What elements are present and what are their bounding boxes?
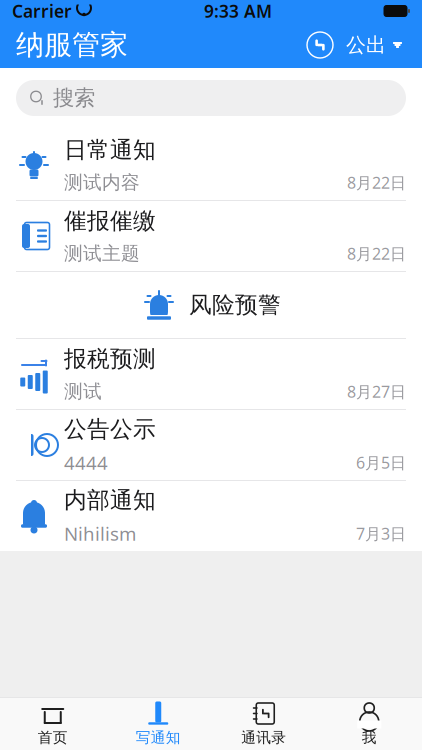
- button[interactable]: 风险预警: [0, 272, 422, 339]
- staticText: 8月22日: [347, 243, 406, 264]
- staticText: 7月3日: [356, 523, 406, 544]
- button[interactable]: 我: [316, 698, 422, 750]
- button[interactable]: 公出: [340, 25, 408, 65]
- button[interactable]: 日常通知: [0, 130, 422, 201]
- staticText: 我: [362, 728, 377, 746]
- staticText: 4444: [64, 450, 108, 475]
- button[interactable]: 通讯录: [211, 698, 316, 750]
- staticText: 8月27日: [347, 381, 406, 402]
- button[interactable]: 催报催缴: [0, 201, 422, 272]
- staticText: 测试主题: [64, 242, 140, 265]
- staticText: 报税预测: [64, 345, 156, 373]
- staticText: [71, 0, 77, 26]
- staticText: Nihilism: [64, 521, 136, 546]
- staticText: 8月22日: [347, 172, 406, 193]
- staticText: 6月5日: [356, 452, 406, 473]
- button[interactable]: 首页: [0, 698, 105, 750]
- staticText: 9:33 AM: [204, 0, 272, 22]
- staticText: 测试: [64, 380, 102, 403]
- staticText: 测试内容: [64, 171, 140, 194]
- staticText: 公告公示: [64, 415, 156, 443]
- button[interactable]: 搜索: [16, 80, 406, 116]
- staticText: 日常通知: [64, 136, 156, 164]
- button[interactable]: 内部通知: [0, 481, 422, 551]
- staticText: 风险预警: [189, 291, 281, 319]
- staticText: 内部通知: [64, 486, 156, 514]
- button[interactable]: 公告公示: [0, 410, 422, 481]
- staticText: 公出: [346, 33, 386, 57]
- staticText: 搜索: [53, 85, 95, 111]
- staticText: Carrier: [12, 0, 72, 22]
- staticText: 纳服管家: [16, 28, 128, 62]
- button[interactable]: 写通知: [105, 698, 211, 750]
- staticText: 催报催缴: [64, 207, 156, 235]
- button[interactable]: 拨打电话: [300, 25, 340, 65]
- staticText: 首页: [38, 728, 68, 746]
- button[interactable]: 报税预测: [0, 339, 422, 410]
- staticText: 写通知: [136, 728, 181, 746]
- staticText: 通讯录: [241, 728, 286, 746]
